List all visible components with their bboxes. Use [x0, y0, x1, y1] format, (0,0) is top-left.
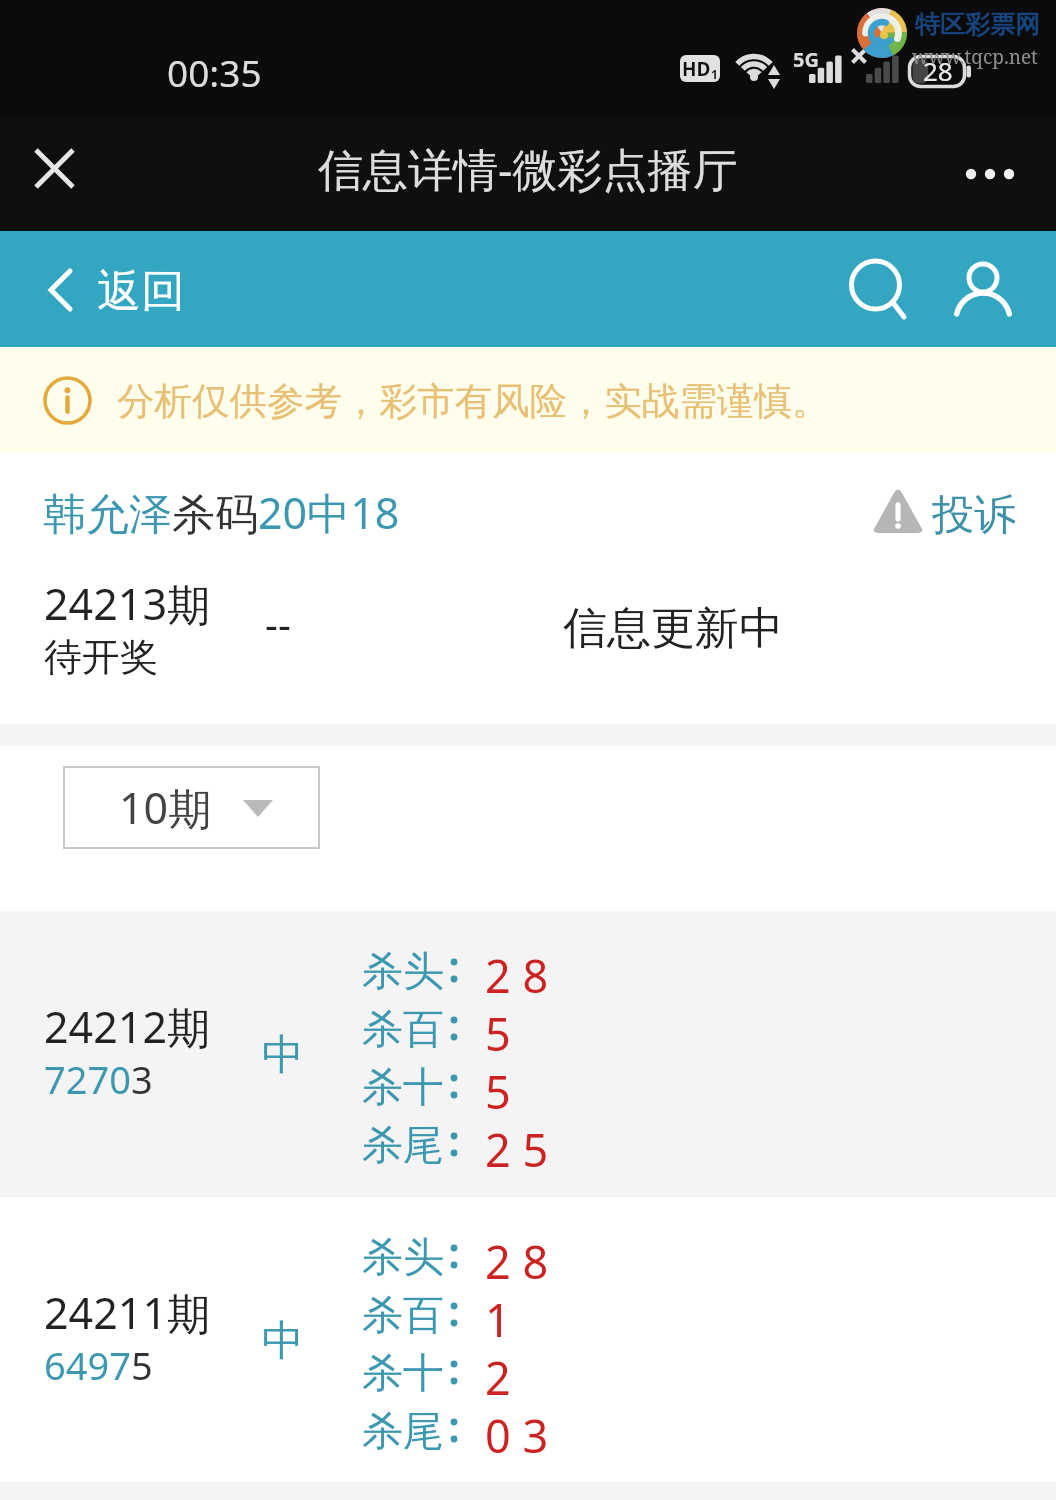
- staticText: 5G: [793, 46, 819, 73]
- button[interactable]: Close: [0, 116, 104, 231]
- staticText: 24211期: [44, 1283, 210, 1342]
- button[interactable]: 投诉: [870, 486, 1016, 539]
- staticText: 64975: [44, 1339, 153, 1391]
- button[interactable]: Search: [827, 231, 923, 347]
- staticText: 杀百: [362, 1290, 444, 1342]
- staticText: 72703: [44, 1053, 153, 1105]
- button[interactable]: 10期: [63, 766, 320, 849]
- button[interactable]: More options: [936, 116, 1056, 231]
- staticText: 5: [485, 1003, 511, 1064]
- staticText: HD: [682, 56, 711, 82]
- staticText: 10期: [119, 778, 212, 837]
- staticText: 28: [923, 53, 953, 88]
- button[interactable]: Account: [935, 234, 1031, 350]
- staticText: 分析仅供参考，彩市有风险，实战需谨慎。: [117, 378, 830, 425]
- staticText: 2: [485, 1347, 511, 1408]
- staticText: 2 8: [485, 1231, 549, 1292]
- staticText: --: [265, 596, 291, 650]
- staticText: 5: [485, 1061, 511, 1122]
- staticText: 2 5: [485, 1119, 549, 1180]
- staticText: 返回: [97, 264, 185, 319]
- button[interactable]: 24211期: [0, 1197, 1056, 1482]
- staticText: 中: [262, 1315, 304, 1368]
- staticText: 信息更新中: [563, 601, 783, 656]
- staticText: 24212期: [44, 997, 210, 1056]
- staticText: 1: [711, 66, 718, 82]
- staticText: 杀尾: [362, 1406, 444, 1458]
- staticText: 杀尾: [362, 1120, 444, 1172]
- staticText: 1: [485, 1289, 511, 1350]
- staticText: 投诉: [932, 489, 1016, 542]
- staticText: 00:35: [167, 47, 262, 97]
- staticText: 中: [262, 1029, 304, 1082]
- staticText: 杀头: [362, 1232, 444, 1284]
- staticText: www.tqcp.net: [912, 44, 1038, 70]
- staticText: 杀头: [362, 946, 444, 998]
- staticText: 2 8: [485, 945, 549, 1006]
- staticText: 24213期: [44, 574, 210, 633]
- button[interactable]: 返回: [0, 231, 210, 347]
- staticText: 信息详情-微彩点播厅: [318, 138, 738, 199]
- staticText: 0 3: [485, 1405, 549, 1466]
- staticText: 韩允泽杀码20中18: [43, 483, 400, 542]
- staticText: 杀十: [362, 1062, 444, 1114]
- staticText: 特区彩票网: [915, 9, 1040, 40]
- staticText: 杀百: [362, 1004, 444, 1056]
- button[interactable]: 24212期: [0, 911, 1056, 1197]
- staticText: 待开奖: [44, 633, 158, 681]
- staticText: 杀十: [362, 1348, 444, 1400]
